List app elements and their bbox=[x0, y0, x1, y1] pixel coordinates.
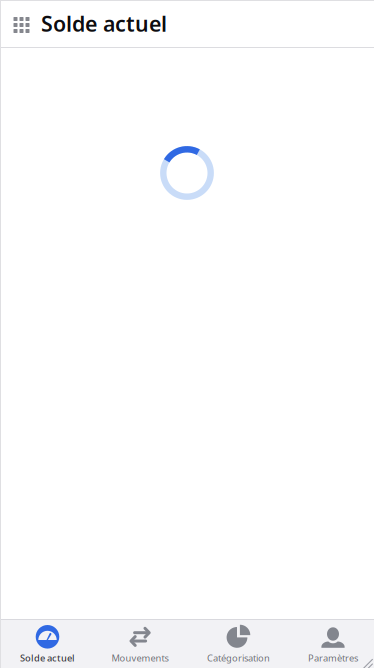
button[interactable]: Menu bbox=[13, 1, 30, 45]
staticText: Mouvements bbox=[111, 652, 168, 664]
staticText: Catégorisation bbox=[207, 652, 270, 664]
button[interactable]: Solde actuel bbox=[0, 618, 95, 668]
button[interactable]: Mouvements bbox=[95, 618, 185, 668]
button[interactable]: Catégorisation bbox=[185, 618, 292, 668]
staticText: Solde actuel bbox=[41, 9, 167, 38]
staticText: Solde actuel bbox=[20, 652, 75, 664]
button[interactable]: Paramètres bbox=[292, 618, 374, 668]
staticText: Paramètres bbox=[308, 652, 358, 664]
